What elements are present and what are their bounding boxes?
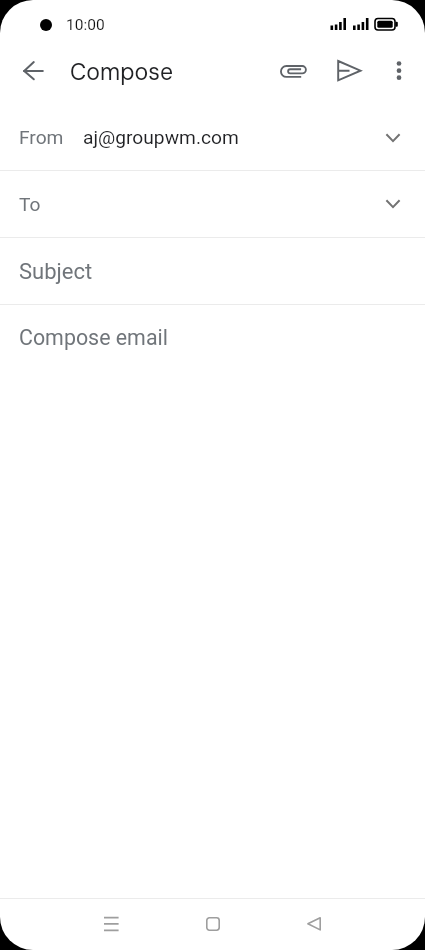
button[interactable]: Compose email — [0, 305, 425, 898]
staticText: 10:00 — [66, 16, 105, 34]
button[interactable]: Recent apps — [88, 898, 134, 950]
staticText: To — [19, 193, 41, 216]
staticText: Compose email — [19, 325, 168, 350]
button[interactable]: Subject — [0, 238, 425, 304]
staticText: From — [19, 126, 64, 149]
button[interactable]: More options — [377, 48, 421, 92]
button[interactable]: Home — [190, 898, 236, 950]
staticText: Compose — [70, 57, 174, 87]
button[interactable]: To — [0, 171, 425, 237]
button[interactable]: Navigate up — [11, 48, 57, 94]
staticText: aj@groupwm.com — [83, 126, 239, 149]
button[interactable]: Show more recipient fields — [375, 186, 411, 222]
button[interactable]: Send — [326, 48, 372, 94]
staticText: Subject — [19, 259, 93, 285]
button[interactable]: Back — [291, 898, 337, 950]
button[interactable]: Show more recipient fields — [375, 120, 411, 156]
button[interactable]: From — [0, 105, 425, 170]
button[interactable]: Attach file — [270, 48, 316, 94]
